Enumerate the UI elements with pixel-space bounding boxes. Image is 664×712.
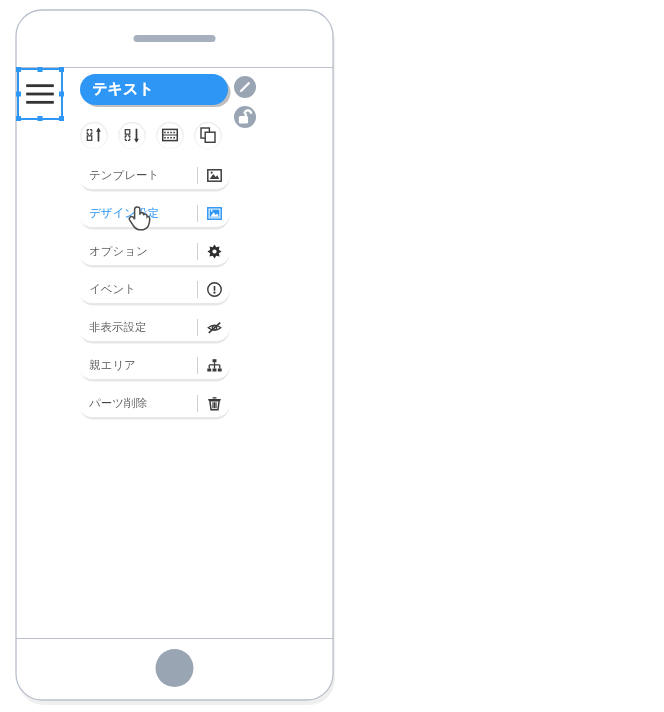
- staticText: デザイン設定: [89, 206, 197, 220]
- button[interactable]: 非表示設定: [78, 313, 230, 341]
- button[interactable]: テンプレート: [78, 161, 230, 189]
- button[interactable]: Move backward: [118, 121, 146, 149]
- button[interactable]: 親エリア: [78, 351, 230, 379]
- button[interactable]: Move forward: [80, 121, 108, 149]
- staticText: テンプレート: [89, 168, 197, 182]
- button[interactable]: Menu: [17, 68, 63, 120]
- staticText: 親エリア: [89, 358, 197, 372]
- staticText: 非表示設定: [89, 320, 197, 334]
- button[interactable]: Table: [156, 121, 184, 149]
- staticText: オプション: [89, 244, 197, 258]
- staticText: パーツ削除: [89, 396, 197, 410]
- staticText: イベント: [89, 282, 197, 296]
- button[interactable]: テキスト: [80, 74, 228, 105]
- button[interactable]: パーツ削除: [78, 389, 230, 417]
- button[interactable]: Duplicate: [194, 121, 222, 149]
- button[interactable]: Unlock: [234, 106, 256, 128]
- button[interactable]: イベント: [78, 275, 230, 303]
- button[interactable]: デザイン設定: [78, 199, 230, 227]
- staticText: テキスト: [92, 80, 154, 99]
- button[interactable]: Edit: [234, 76, 256, 98]
- button[interactable]: オプション: [78, 237, 230, 265]
